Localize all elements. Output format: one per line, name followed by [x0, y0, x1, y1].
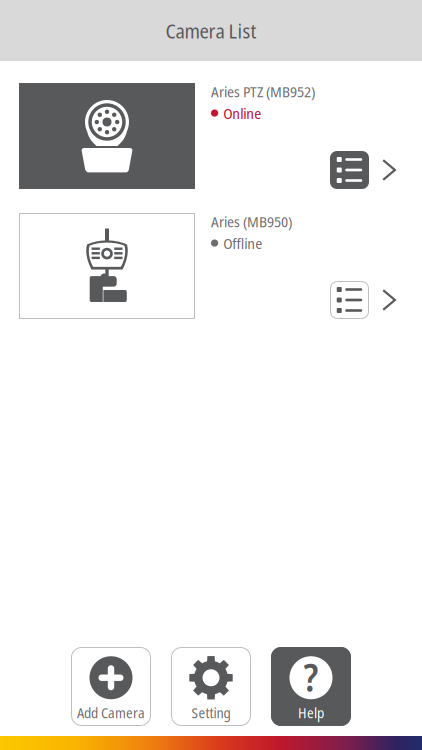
staticText: Add Camera — [77, 703, 145, 722]
button[interactable]: Event list — [330, 281, 369, 319]
staticText: Offline — [223, 233, 262, 253]
staticText: Aries (MB950) — [211, 211, 292, 232]
button[interactable]: ? — [271, 647, 351, 726]
staticText: Aries PTZ (MB952) — [211, 81, 315, 102]
button[interactable]: Camera details — [379, 154, 399, 186]
button[interactable]: Event list — [330, 151, 369, 189]
staticText: ? — [303, 650, 318, 703]
staticText: Camera List — [165, 17, 256, 44]
staticText: Online — [223, 103, 261, 123]
button[interactable]: Aries (MB950) live view — [19, 213, 195, 319]
button[interactable]: Aries PTZ (MB952) live view — [19, 83, 195, 189]
staticText: Setting — [191, 703, 230, 722]
button[interactable]: Setting — [171, 647, 251, 726]
button[interactable]: Add Camera — [71, 647, 151, 726]
staticText: Help — [298, 703, 324, 722]
button[interactable]: Camera details — [379, 284, 399, 316]
